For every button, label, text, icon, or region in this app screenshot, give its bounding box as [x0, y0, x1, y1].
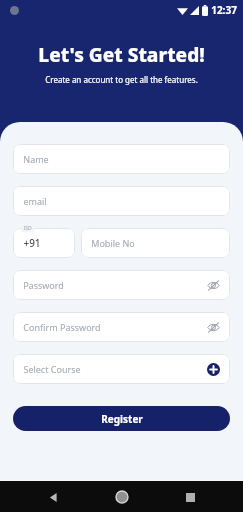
staticText: 12:37 [211, 3, 237, 17]
button[interactable]: email [13, 186, 230, 216]
staticText: Create an account to get all the feature… [45, 74, 198, 85]
staticText: Let's Get Started! [38, 42, 205, 68]
button[interactable]: Add course [205, 361, 221, 377]
staticText: Name [23, 153, 49, 165]
button[interactable]: Password [13, 270, 230, 300]
button[interactable]: Confirm Password [13, 312, 230, 342]
staticText: ISD [23, 225, 32, 232]
button[interactable]: Home [107, 482, 137, 512]
staticText: Register [101, 412, 143, 426]
staticText: Select Course [23, 363, 81, 375]
staticText: Confirm Password [23, 321, 101, 333]
button[interactable]: Back [38, 482, 68, 512]
button[interactable]: Toggle password visibility [205, 319, 221, 335]
staticText: Mobile No [91, 237, 135, 249]
button[interactable]: Name [13, 144, 230, 174]
button[interactable]: ISD [13, 228, 75, 258]
button[interactable]: Recent apps [175, 482, 205, 512]
staticText: email [23, 195, 47, 207]
staticText: +91 [23, 236, 41, 250]
button[interactable]: Mobile No [81, 228, 230, 258]
button[interactable]: Select Course [13, 354, 230, 384]
button[interactable]: Toggle password visibility [205, 277, 221, 293]
staticText: Password [23, 279, 64, 291]
button[interactable]: Register [13, 406, 230, 431]
